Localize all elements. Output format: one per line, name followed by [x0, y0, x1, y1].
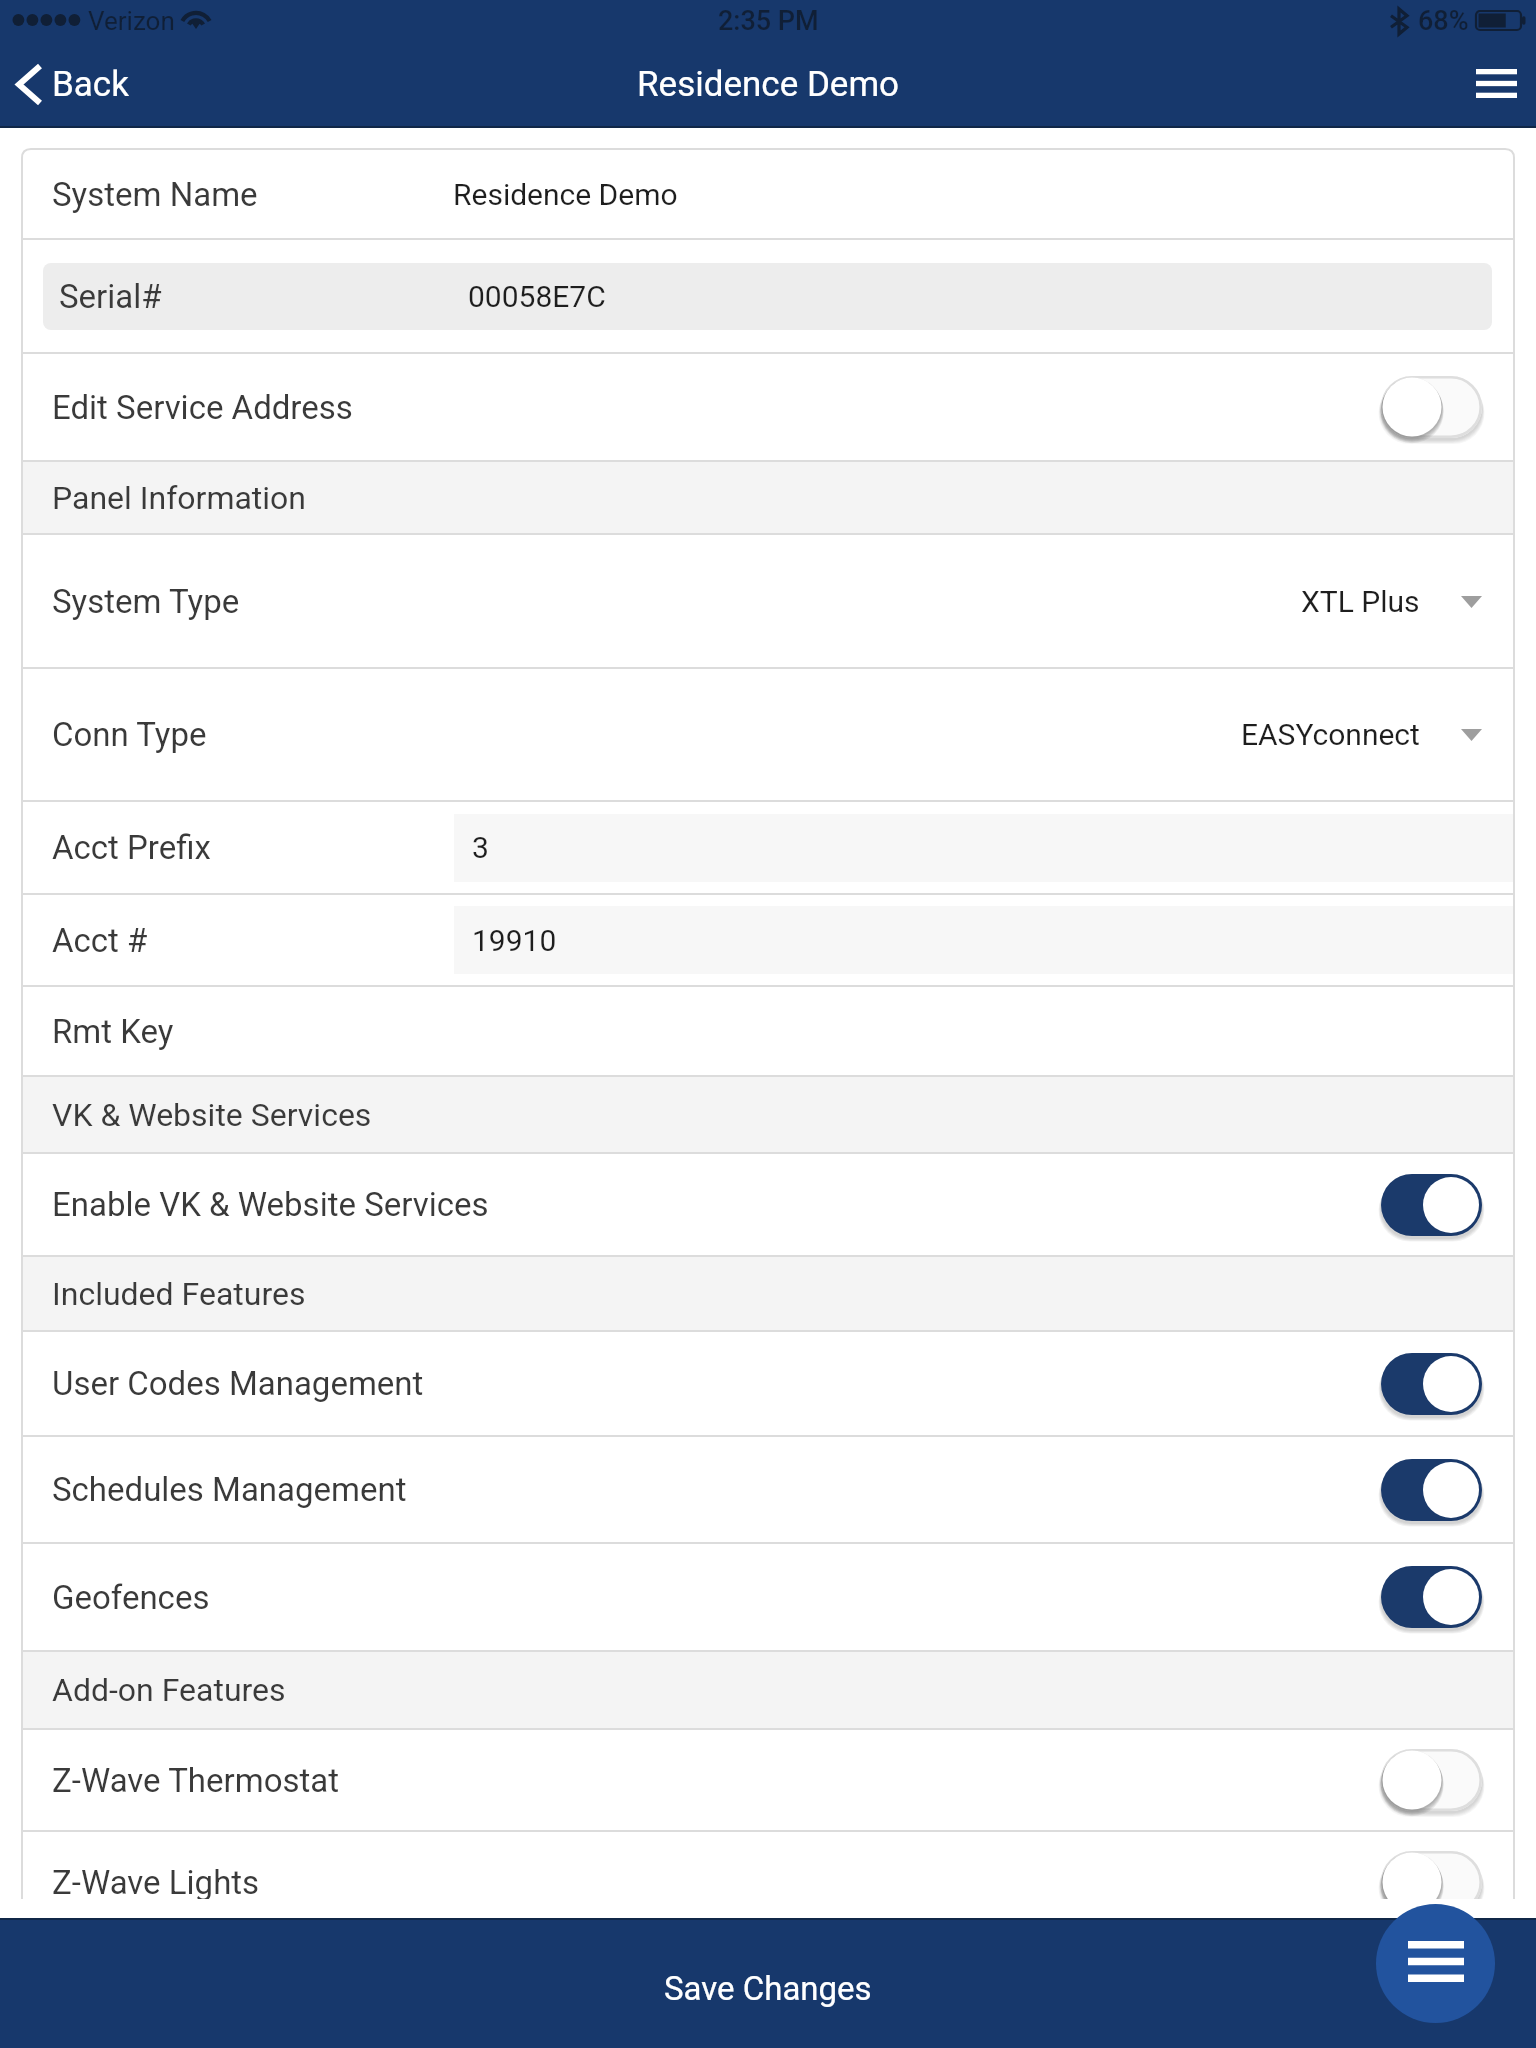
staticText: 00058E7C	[468, 279, 606, 314]
button[interactable]: Schedules Management	[21, 1437, 1515, 1542]
staticText: VK & Website Services	[52, 1096, 372, 1134]
staticText: XTL Plus	[1301, 584, 1420, 619]
staticText: Geofences	[52, 1578, 210, 1617]
staticText: Edit Service Address	[52, 388, 353, 427]
button[interactable]: Acct Prefix	[21, 802, 1515, 893]
staticText: Rmt Key	[52, 1012, 174, 1051]
staticText: Residence Demo	[637, 64, 900, 105]
button[interactable]: Rmt Key	[21, 987, 1515, 1075]
staticText: 3	[472, 830, 489, 865]
button[interactable]: On	[1381, 1174, 1482, 1236]
button[interactable]: Menu	[1460, 49, 1532, 121]
button[interactable]: Off	[1381, 376, 1482, 438]
staticText: Residence Demo	[453, 177, 678, 212]
button[interactable]: Edit Service Address	[21, 354, 1515, 460]
staticText: Acct #	[52, 921, 148, 960]
staticText: Schedules Management	[52, 1470, 407, 1509]
button[interactable]: System Name	[21, 150, 1515, 238]
button[interactable]: Serial#	[21, 240, 1515, 352]
button[interactable]: Z-Wave Thermostat	[21, 1730, 1515, 1830]
button[interactable]: On	[1381, 1459, 1482, 1521]
staticText: System Type	[52, 582, 240, 621]
staticText: Enable VK & Website Services	[52, 1185, 489, 1224]
staticText: 68%	[1418, 5, 1469, 37]
button[interactable]: System Type	[21, 535, 1515, 667]
staticText: Verizon	[88, 6, 175, 36]
staticText: Z-Wave Thermostat	[52, 1761, 340, 1800]
staticText: Back	[52, 64, 129, 105]
staticText: Included Features	[52, 1275, 306, 1313]
button[interactable]: Z-Wave Lights	[21, 1832, 1515, 1899]
button[interactable]: Acct #	[21, 895, 1515, 985]
button[interactable]: On	[1381, 1353, 1482, 1415]
staticText: Conn Type	[52, 715, 207, 754]
button[interactable]: On	[1381, 1566, 1482, 1628]
staticText: Add-on Features	[52, 1671, 286, 1709]
button[interactable]: Conn Type	[21, 669, 1515, 800]
button[interactable]: User Codes Management	[21, 1332, 1515, 1435]
button[interactable]: Geofences	[21, 1544, 1515, 1650]
staticText: Serial#	[59, 277, 162, 316]
staticText: Panel Information	[52, 479, 307, 517]
staticText: EASYconnect	[1241, 717, 1420, 752]
button[interactable]: Enable VK & Website Services	[21, 1154, 1515, 1255]
staticText: Save Changes	[664, 1969, 872, 2008]
button[interactable]: Save Changes	[0, 1918, 1536, 2048]
button[interactable]: Open menu	[1376, 1904, 1495, 2023]
button[interactable]: Off	[1381, 1851, 1482, 1899]
staticText: Acct Prefix	[52, 828, 211, 867]
button[interactable]: Back	[16, 63, 129, 106]
staticText: 19910	[472, 923, 557, 958]
button[interactable]: Off	[1381, 1749, 1482, 1811]
staticText: Z-Wave Lights	[52, 1863, 260, 1899]
staticText: System Name	[52, 175, 258, 214]
staticText: User Codes Management	[52, 1364, 424, 1403]
staticText: 2:35 PM	[718, 5, 819, 37]
